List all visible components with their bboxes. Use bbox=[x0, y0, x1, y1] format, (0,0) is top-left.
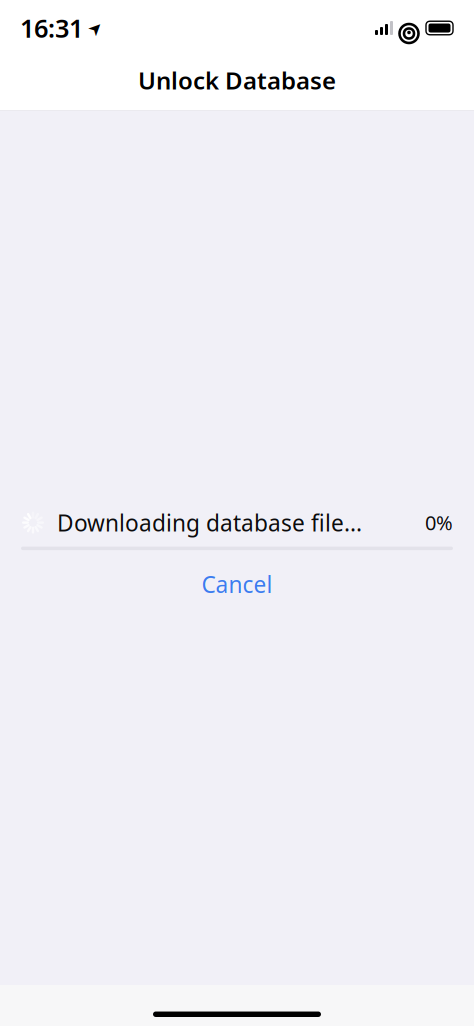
staticText: ➤ bbox=[88, 18, 103, 38]
staticText: 0% bbox=[425, 509, 453, 536]
staticText: Cancel bbox=[201, 569, 272, 599]
staticText: Unlock Database bbox=[138, 64, 336, 96]
staticText: 16:31 bbox=[20, 11, 83, 45]
button[interactable]: Cancel bbox=[0, 560, 474, 608]
staticText: Downloading database file... bbox=[57, 507, 362, 538]
